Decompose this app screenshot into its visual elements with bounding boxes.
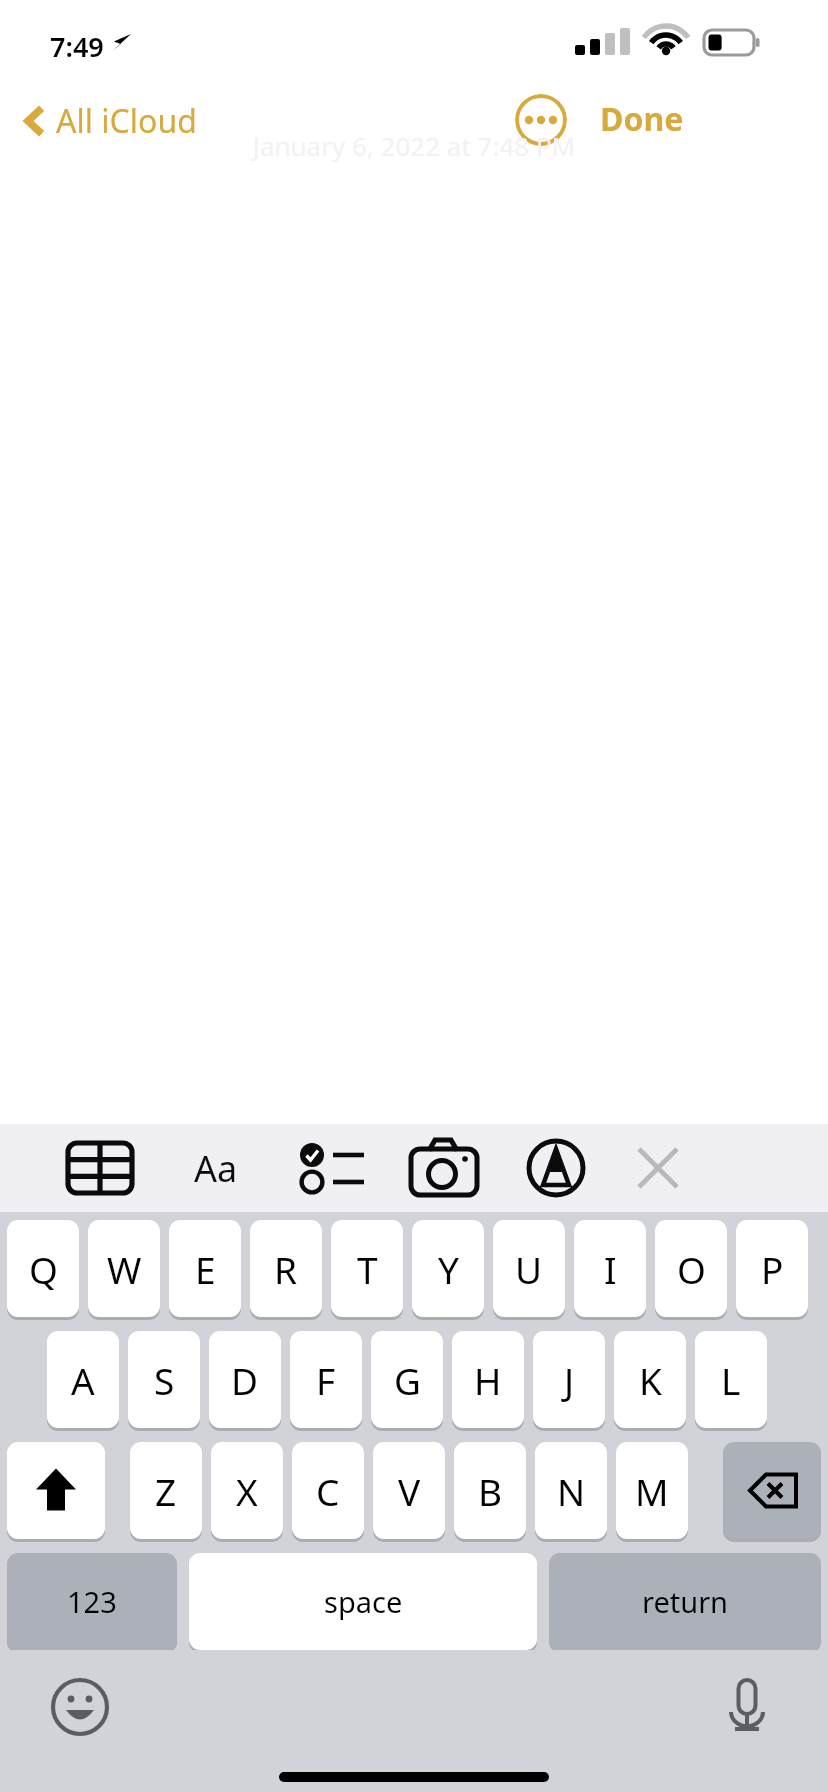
button[interactable]: Shift — [7, 1442, 105, 1539]
staticText: H — [474, 1355, 502, 1405]
staticText: S — [154, 1355, 175, 1405]
staticText: T — [357, 1244, 378, 1294]
button[interactable]: Camera — [404, 1136, 484, 1200]
button[interactable]: S — [128, 1331, 200, 1428]
button[interactable]: Checklist — [290, 1136, 370, 1200]
button[interactable]: Table — [60, 1136, 140, 1200]
button[interactable]: space — [189, 1553, 537, 1650]
staticText: L — [721, 1355, 741, 1405]
staticText: B — [478, 1466, 503, 1516]
button[interactable]: Close — [618, 1136, 698, 1200]
staticText: space — [324, 1582, 403, 1621]
button[interactable]: 123 — [7, 1553, 177, 1650]
staticText: R — [274, 1244, 298, 1294]
button[interactable]: Z — [130, 1442, 202, 1539]
staticText: All iCloud — [56, 99, 197, 143]
button[interactable]: L — [695, 1331, 767, 1428]
button[interactable]: Done — [592, 93, 692, 145]
button[interactable]: Emoji — [45, 1672, 115, 1742]
button[interactable]: R — [250, 1220, 322, 1317]
button[interactable]: O — [655, 1220, 727, 1317]
staticText: Z — [155, 1466, 177, 1516]
staticText: J — [564, 1355, 575, 1405]
button[interactable]: Markup — [516, 1136, 596, 1200]
staticText: X — [236, 1466, 258, 1516]
staticText: 7:49 — [50, 28, 104, 65]
button[interactable]: N — [535, 1442, 607, 1539]
button[interactable]: All iCloud — [18, 95, 203, 147]
staticText: January 6, 2022 at 7:48 PM — [0, 128, 828, 163]
button[interactable]: M — [616, 1442, 688, 1539]
button[interactable]: K — [614, 1331, 686, 1428]
button[interactable]: B — [454, 1442, 526, 1539]
staticText: V — [398, 1466, 421, 1516]
button[interactable]: D — [209, 1331, 281, 1428]
staticText: C — [316, 1466, 340, 1516]
staticText: K — [639, 1355, 662, 1405]
staticText: Q — [29, 1244, 58, 1294]
staticText: O — [677, 1244, 706, 1294]
button[interactable]: Backspace — [723, 1442, 821, 1539]
button[interactable]: Q — [7, 1220, 79, 1317]
button[interactable]: X — [211, 1442, 283, 1539]
button[interactable]: return — [549, 1553, 821, 1650]
staticText: N — [557, 1466, 586, 1516]
staticText: Y — [438, 1244, 459, 1294]
staticText: G — [394, 1355, 421, 1405]
staticText: 123 — [67, 1582, 117, 1621]
button[interactable]: Text format — [176, 1136, 256, 1200]
staticText: D — [231, 1355, 259, 1405]
button[interactable]: T — [331, 1220, 403, 1317]
button[interactable]: U — [493, 1220, 565, 1317]
staticText: Done — [600, 97, 684, 141]
button[interactable]: G — [371, 1331, 443, 1428]
button[interactable]: More options — [515, 94, 567, 146]
button[interactable]: P — [736, 1220, 808, 1317]
button[interactable]: J — [533, 1331, 605, 1428]
staticText: U — [515, 1244, 543, 1294]
button[interactable]: V — [373, 1442, 445, 1539]
button[interactable]: Y — [412, 1220, 484, 1317]
staticText: E — [195, 1244, 216, 1294]
button[interactable]: I — [574, 1220, 646, 1317]
staticText: F — [316, 1355, 336, 1405]
staticText: I — [604, 1244, 617, 1294]
button[interactable]: Dictate — [712, 1672, 782, 1742]
staticText: W — [107, 1244, 142, 1294]
staticText: Aa — [194, 1144, 238, 1193]
button[interactable]: W — [88, 1220, 160, 1317]
staticText: M — [635, 1466, 669, 1516]
button[interactable]: E — [169, 1220, 241, 1317]
button[interactable]: F — [290, 1331, 362, 1428]
button[interactable]: C — [292, 1442, 364, 1539]
staticText: P — [761, 1244, 784, 1294]
button[interactable]: H — [452, 1331, 524, 1428]
button[interactable]: A — [47, 1331, 119, 1428]
staticText: A — [71, 1355, 95, 1405]
staticText: return — [642, 1582, 729, 1621]
